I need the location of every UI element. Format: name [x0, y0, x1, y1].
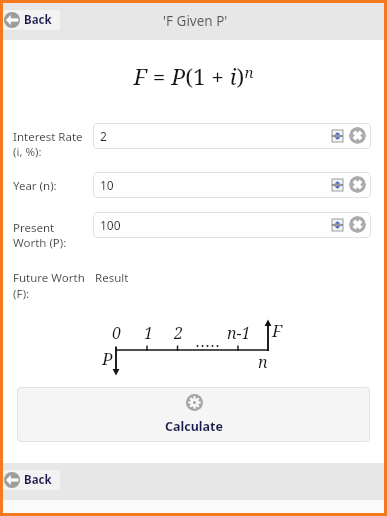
- staticText: 10: [100, 177, 114, 193]
- button[interactable]: Clear: [349, 176, 366, 193]
- button[interactable]: Calculate: [17, 387, 370, 442]
- staticText: Back: [24, 12, 52, 28]
- staticText: n: [258, 351, 268, 373]
- button[interactable]: Clear: [349, 127, 366, 144]
- button[interactable]: Back: [3, 10, 60, 30]
- staticText: Interest Rate: [13, 129, 83, 145]
- staticText: F = P(1 + i)n: [3, 61, 384, 92]
- staticText: 0: [112, 322, 121, 344]
- staticText: Worth (P):: [13, 235, 67, 251]
- button[interactable]: 10: [93, 172, 371, 198]
- staticText: Result: [95, 270, 129, 286]
- staticText: Year (n):: [13, 178, 57, 194]
- button[interactable]: Clear: [349, 216, 366, 233]
- staticText: Future Worth: [13, 270, 85, 286]
- staticText: Present: [13, 220, 55, 236]
- staticText: F: [272, 319, 283, 342]
- staticText: Back: [24, 472, 52, 488]
- staticText: 2: [174, 322, 183, 344]
- staticText: P: [102, 347, 113, 370]
- button[interactable]: 100: [93, 212, 371, 238]
- staticText: 2: [100, 128, 107, 144]
- staticText: n-1: [227, 322, 251, 344]
- staticText: (F):: [13, 286, 30, 302]
- button[interactable]: Stepper: [332, 179, 343, 191]
- staticText: 'F Given P': [163, 12, 228, 30]
- button[interactable]: Stepper: [332, 130, 343, 142]
- staticText: Calculate: [165, 418, 223, 435]
- staticText: 1: [144, 322, 153, 344]
- staticText: 100: [100, 217, 121, 233]
- button[interactable]: Back: [3, 470, 60, 490]
- button[interactable]: 2: [93, 123, 371, 149]
- button[interactable]: Stepper: [332, 219, 343, 231]
- staticText: (i, %):: [13, 144, 42, 160]
